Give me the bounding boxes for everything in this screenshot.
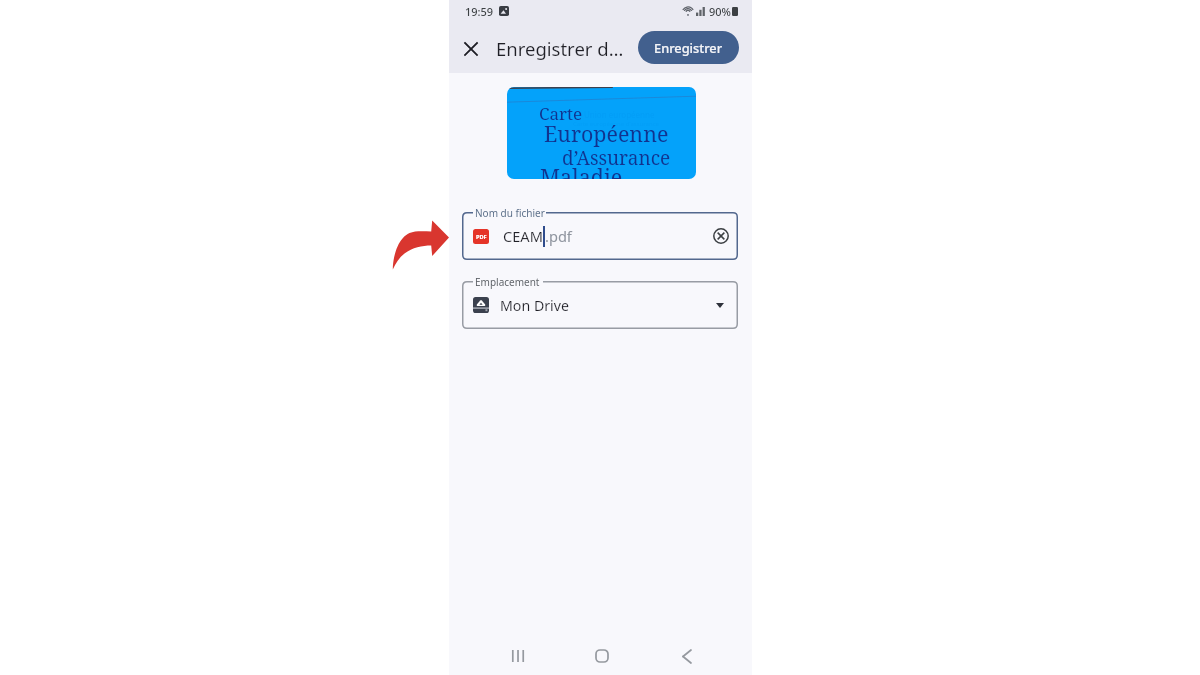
button[interactable]: Enregistrer — [638, 31, 739, 64]
button[interactable]: Fermer — [457, 35, 485, 63]
button[interactable]: Ouvrir la liste — [710, 295, 730, 315]
staticText: Nom du fichier — [475, 206, 545, 220]
staticText: Carte — [539, 102, 583, 125]
staticText: Carte européenne d'assurance — [573, 120, 659, 128]
staticText: Maladie — [540, 162, 623, 179]
staticText: CEAM — [503, 226, 543, 246]
button[interactable]: Retour — [667, 637, 707, 675]
staticText: Mon Drive — [500, 296, 569, 315]
button[interactable]: Effacer — [710, 225, 732, 247]
button[interactable]: Mon Drive — [462, 281, 738, 329]
staticText: Emplacement — [475, 275, 540, 289]
staticText: Enregistrer — [654, 39, 723, 56]
button[interactable]: Accueil — [582, 637, 622, 675]
button[interactable]: PDF — [462, 212, 738, 260]
staticText: .pdf — [545, 226, 572, 246]
staticText: 19:59 — [465, 4, 494, 19]
button[interactable]: Applications récentes — [498, 637, 538, 675]
staticText: Enregistrer d… — [496, 36, 624, 61]
staticText: PDF — [476, 233, 487, 241]
staticText: Européenne — [544, 119, 669, 148]
staticText: d’Assurance — [562, 145, 671, 171]
staticText: 90% — [709, 4, 731, 19]
